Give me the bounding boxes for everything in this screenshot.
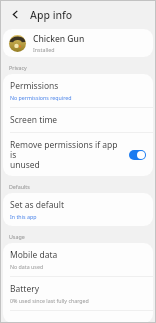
button[interactable]: Remove permissions if app is unused (3, 133, 153, 176)
button[interactable]: Permissions (3, 74, 153, 107)
button[interactable]: Mobile data (3, 243, 153, 276)
button[interactable]: Storage (3, 311, 153, 323)
staticText: Usage (9, 233, 25, 240)
staticText: Privacy (9, 64, 27, 71)
staticText: No permissions required (10, 94, 72, 101)
staticText: Installed (33, 46, 55, 53)
button[interactable]: Back (7, 6, 24, 23)
button[interactable]: Set as default (3, 193, 153, 226)
button[interactable]: Battery (3, 277, 153, 310)
staticText: Remove permissions if app is unused (10, 139, 123, 170)
staticText: App info (30, 8, 73, 22)
other: Remove permissions if app is unused, on (129, 150, 146, 160)
staticText: In this app (10, 213, 37, 220)
staticText: Defaults (9, 183, 30, 190)
staticText: Permissions (10, 80, 59, 92)
staticText: 0% used since last fully charged (10, 297, 89, 304)
staticText: Chicken Gun (33, 33, 85, 45)
button[interactable]: Screen time (3, 108, 153, 132)
button[interactable]: Chicken Gun (3, 29, 153, 57)
staticText: Battery (10, 283, 40, 295)
staticText: Screen time (10, 114, 58, 126)
staticText: Set as default (10, 199, 65, 211)
staticText: No data used (10, 263, 44, 270)
staticText: Mobile data (10, 249, 58, 261)
